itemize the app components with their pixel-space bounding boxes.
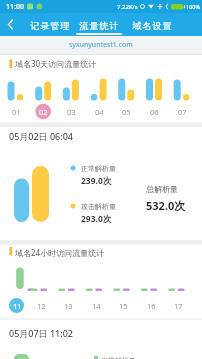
button[interactable]: 14 [86, 296, 106, 315]
staticText: 11 [13, 301, 22, 311]
staticText: 05月07日 11:02 [9, 327, 73, 339]
staticText: 05 [122, 107, 131, 117]
button[interactable]: 15 [113, 296, 133, 315]
staticText: 06 [150, 107, 159, 117]
button[interactable]: 16 [141, 296, 161, 315]
button[interactable]: 域名设置 [129, 15, 174, 36]
button[interactable]: 记录管理 [28, 15, 72, 36]
staticText: 15 [119, 301, 128, 311]
button[interactable]: 05 [116, 103, 136, 121]
staticText: 域名设置 [132, 20, 172, 31]
staticText: 域名30天访问流量统计 [15, 58, 97, 69]
staticText: 100% [186, 3, 201, 10]
button[interactable]: 13 [58, 296, 78, 315]
staticText: 7.22K/s [117, 3, 138, 11]
staticText: 正常解析量 [81, 164, 116, 173]
staticText: 293.0次 [81, 213, 112, 225]
button[interactable]: 17 [168, 296, 188, 315]
staticText: syxunyuntest1.com [69, 40, 133, 50]
button[interactable]: syxunyuntest1.com [0, 36, 202, 54]
staticText: 532.0次 [146, 198, 186, 213]
button[interactable]: 06 [144, 103, 164, 121]
staticText: 16 [147, 301, 156, 311]
staticText: 域名24小时访问流量统计 [15, 247, 105, 258]
button[interactable] [0, 13, 22, 36]
staticText: 14 [92, 301, 101, 311]
staticText: 03 [67, 107, 76, 117]
staticText: 流量统计 [79, 20, 119, 31]
staticText: 17 [174, 301, 183, 311]
button[interactable]: 12 [31, 296, 51, 315]
staticText: 239.0次 [81, 175, 112, 187]
staticText: 正常解析量 [101, 356, 136, 359]
staticText: 记录管理 [30, 20, 70, 31]
button[interactable]: 04 [89, 103, 109, 121]
button[interactable]: 01 [6, 103, 26, 121]
button[interactable]: 03 [61, 103, 81, 121]
staticText: 攻击解析量 [81, 202, 116, 211]
staticText: 总解析量 [146, 184, 178, 194]
staticText: 01 [12, 107, 21, 117]
staticText: 07 [178, 107, 187, 117]
staticText: 12 [37, 301, 46, 311]
staticText: 02 [39, 107, 48, 117]
button[interactable]: 07 [172, 103, 192, 121]
button[interactable]: 11 [7, 296, 27, 315]
staticText: 04 [95, 107, 104, 117]
button[interactable]: 流量统计 [76, 15, 121, 36]
staticText: 05月02日 06:04 [9, 130, 73, 142]
button[interactable]: 02 [33, 103, 53, 121]
staticText: 11:00 [6, 2, 24, 12]
staticText: 13 [64, 301, 73, 311]
